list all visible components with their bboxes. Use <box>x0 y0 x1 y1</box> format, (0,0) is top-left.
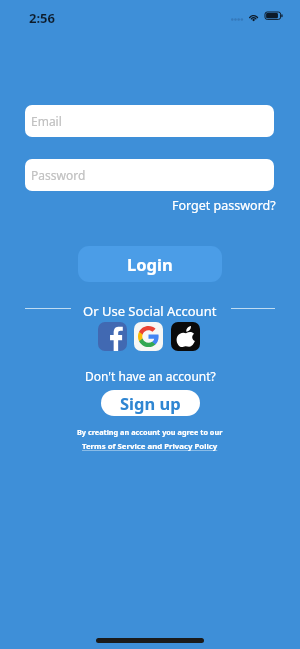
staticText: Or Use Social Account <box>83 302 217 320</box>
staticText: Email <box>31 113 62 129</box>
staticText: Terms of Service and Privacy Policy <box>82 441 218 452</box>
button[interactable]: Sign in with Google <box>134 322 163 351</box>
staticText: By creating an account you agree to our <box>77 427 223 437</box>
button[interactable]: Sign in with Apple <box>171 322 200 351</box>
staticText: 2:56 <box>29 9 55 27</box>
button[interactable]: Terms of Service and Privacy Policy <box>82 441 218 452</box>
staticText: Login <box>127 253 173 275</box>
staticText: Forget password? <box>172 197 276 214</box>
button[interactable]: Sign up <box>101 390 200 416</box>
button[interactable]: Login <box>78 246 222 282</box>
staticText: Password <box>31 167 86 183</box>
button[interactable]: Forget password? <box>172 197 276 214</box>
button[interactable]: Sign in with Facebook <box>98 322 127 351</box>
staticText: Don't have an account? <box>85 368 216 384</box>
button[interactable]: Email <box>25 105 274 137</box>
staticText: Sign up <box>120 392 181 414</box>
button[interactable]: Password <box>25 159 274 191</box>
